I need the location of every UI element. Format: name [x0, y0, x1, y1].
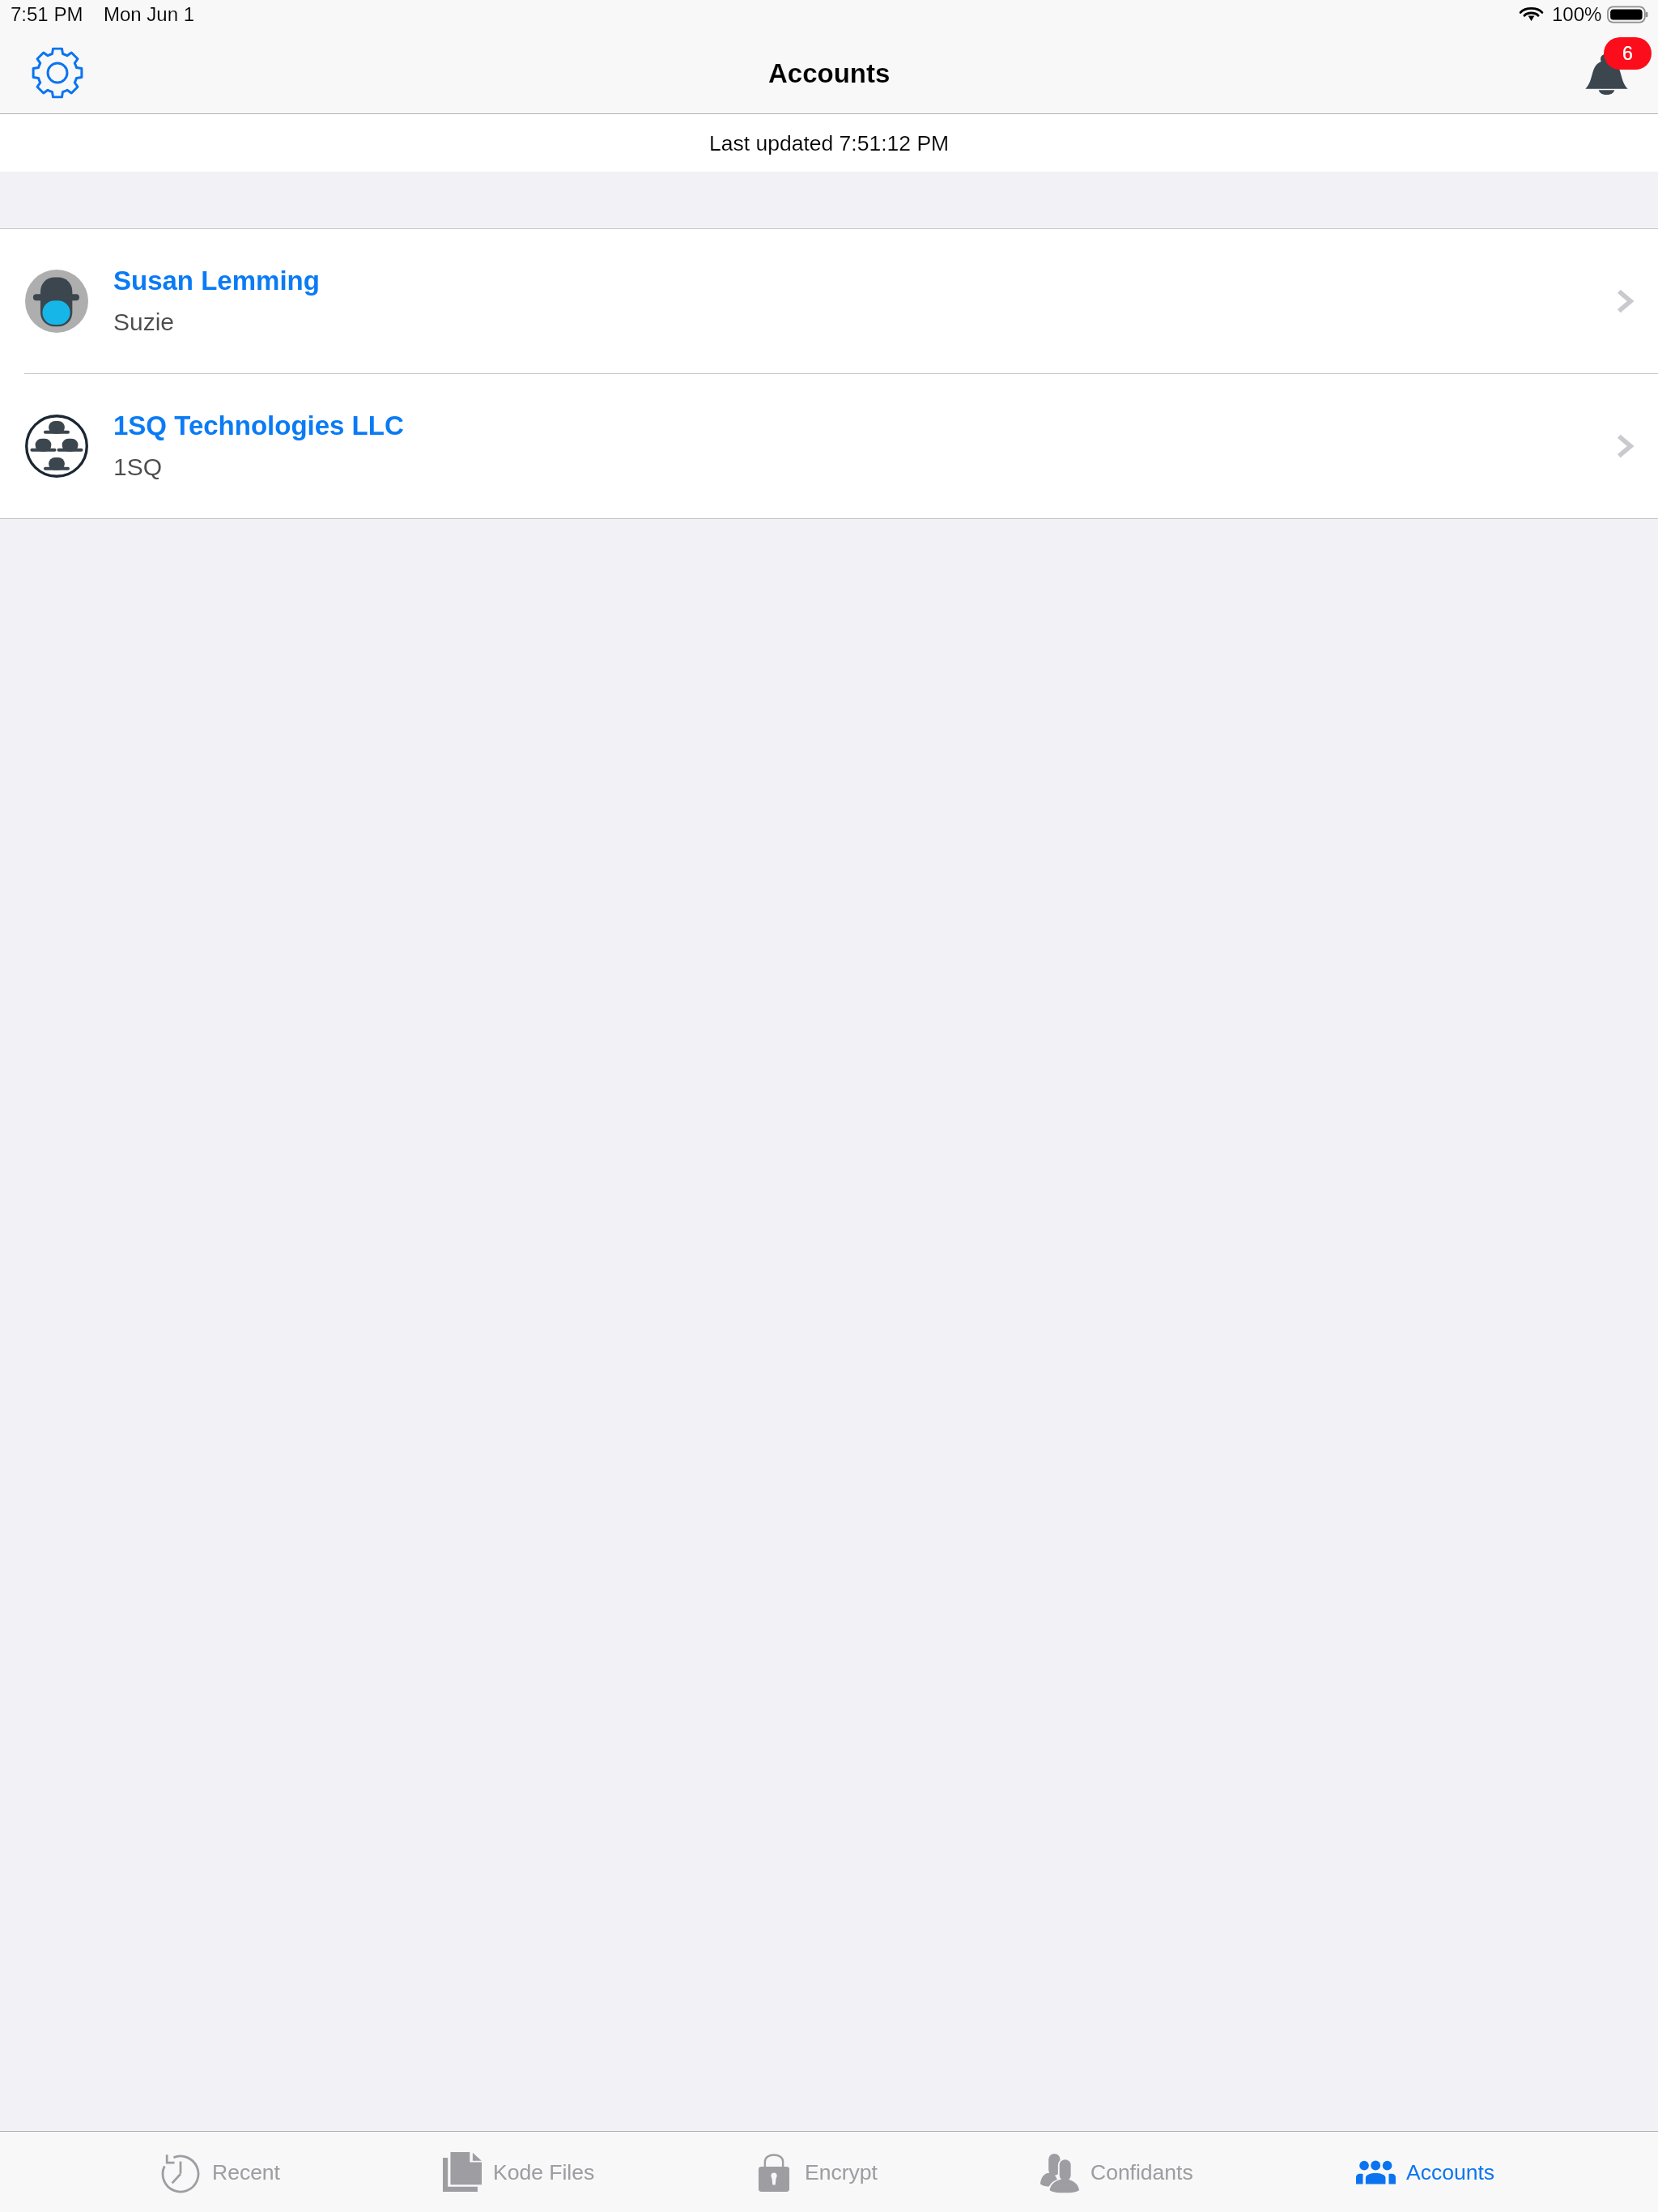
button[interactable]: Notifications [1574, 36, 1652, 107]
staticText: Kode Files [493, 2160, 595, 2184]
staticText: Last updated 7:51:12 PM [709, 131, 950, 155]
staticText: Recent [212, 2160, 280, 2184]
staticText: 1SQ Technologies LLC [113, 410, 404, 440]
button[interactable]: Settings [21, 42, 93, 103]
staticText: 7:51 PM [11, 3, 83, 25]
staticText: Suzie [113, 308, 175, 336]
button[interactable]: Susan Lemming [0, 229, 1658, 373]
staticText: Accounts [768, 58, 891, 88]
staticText: Confidants [1090, 2160, 1193, 2184]
staticText: Encrypt [805, 2160, 878, 2184]
staticText: Mon Jun 1 [104, 3, 195, 25]
button[interactable]: Accounts [1356, 2132, 1495, 2212]
staticText: 6 [1622, 43, 1633, 64]
staticText: 1SQ [113, 453, 163, 481]
button[interactable]: Recent [163, 2132, 280, 2212]
staticText: Susan Lemming [113, 266, 320, 296]
button[interactable]: Kode Files [443, 2132, 595, 2212]
button[interactable]: 1SQ Technologies LLC [0, 374, 1658, 518]
button[interactable]: Confidants [1040, 2132, 1193, 2212]
button[interactable]: Encrypt [759, 2132, 878, 2212]
staticText: Accounts [1406, 2160, 1495, 2184]
staticText: 100% [1552, 3, 1602, 25]
